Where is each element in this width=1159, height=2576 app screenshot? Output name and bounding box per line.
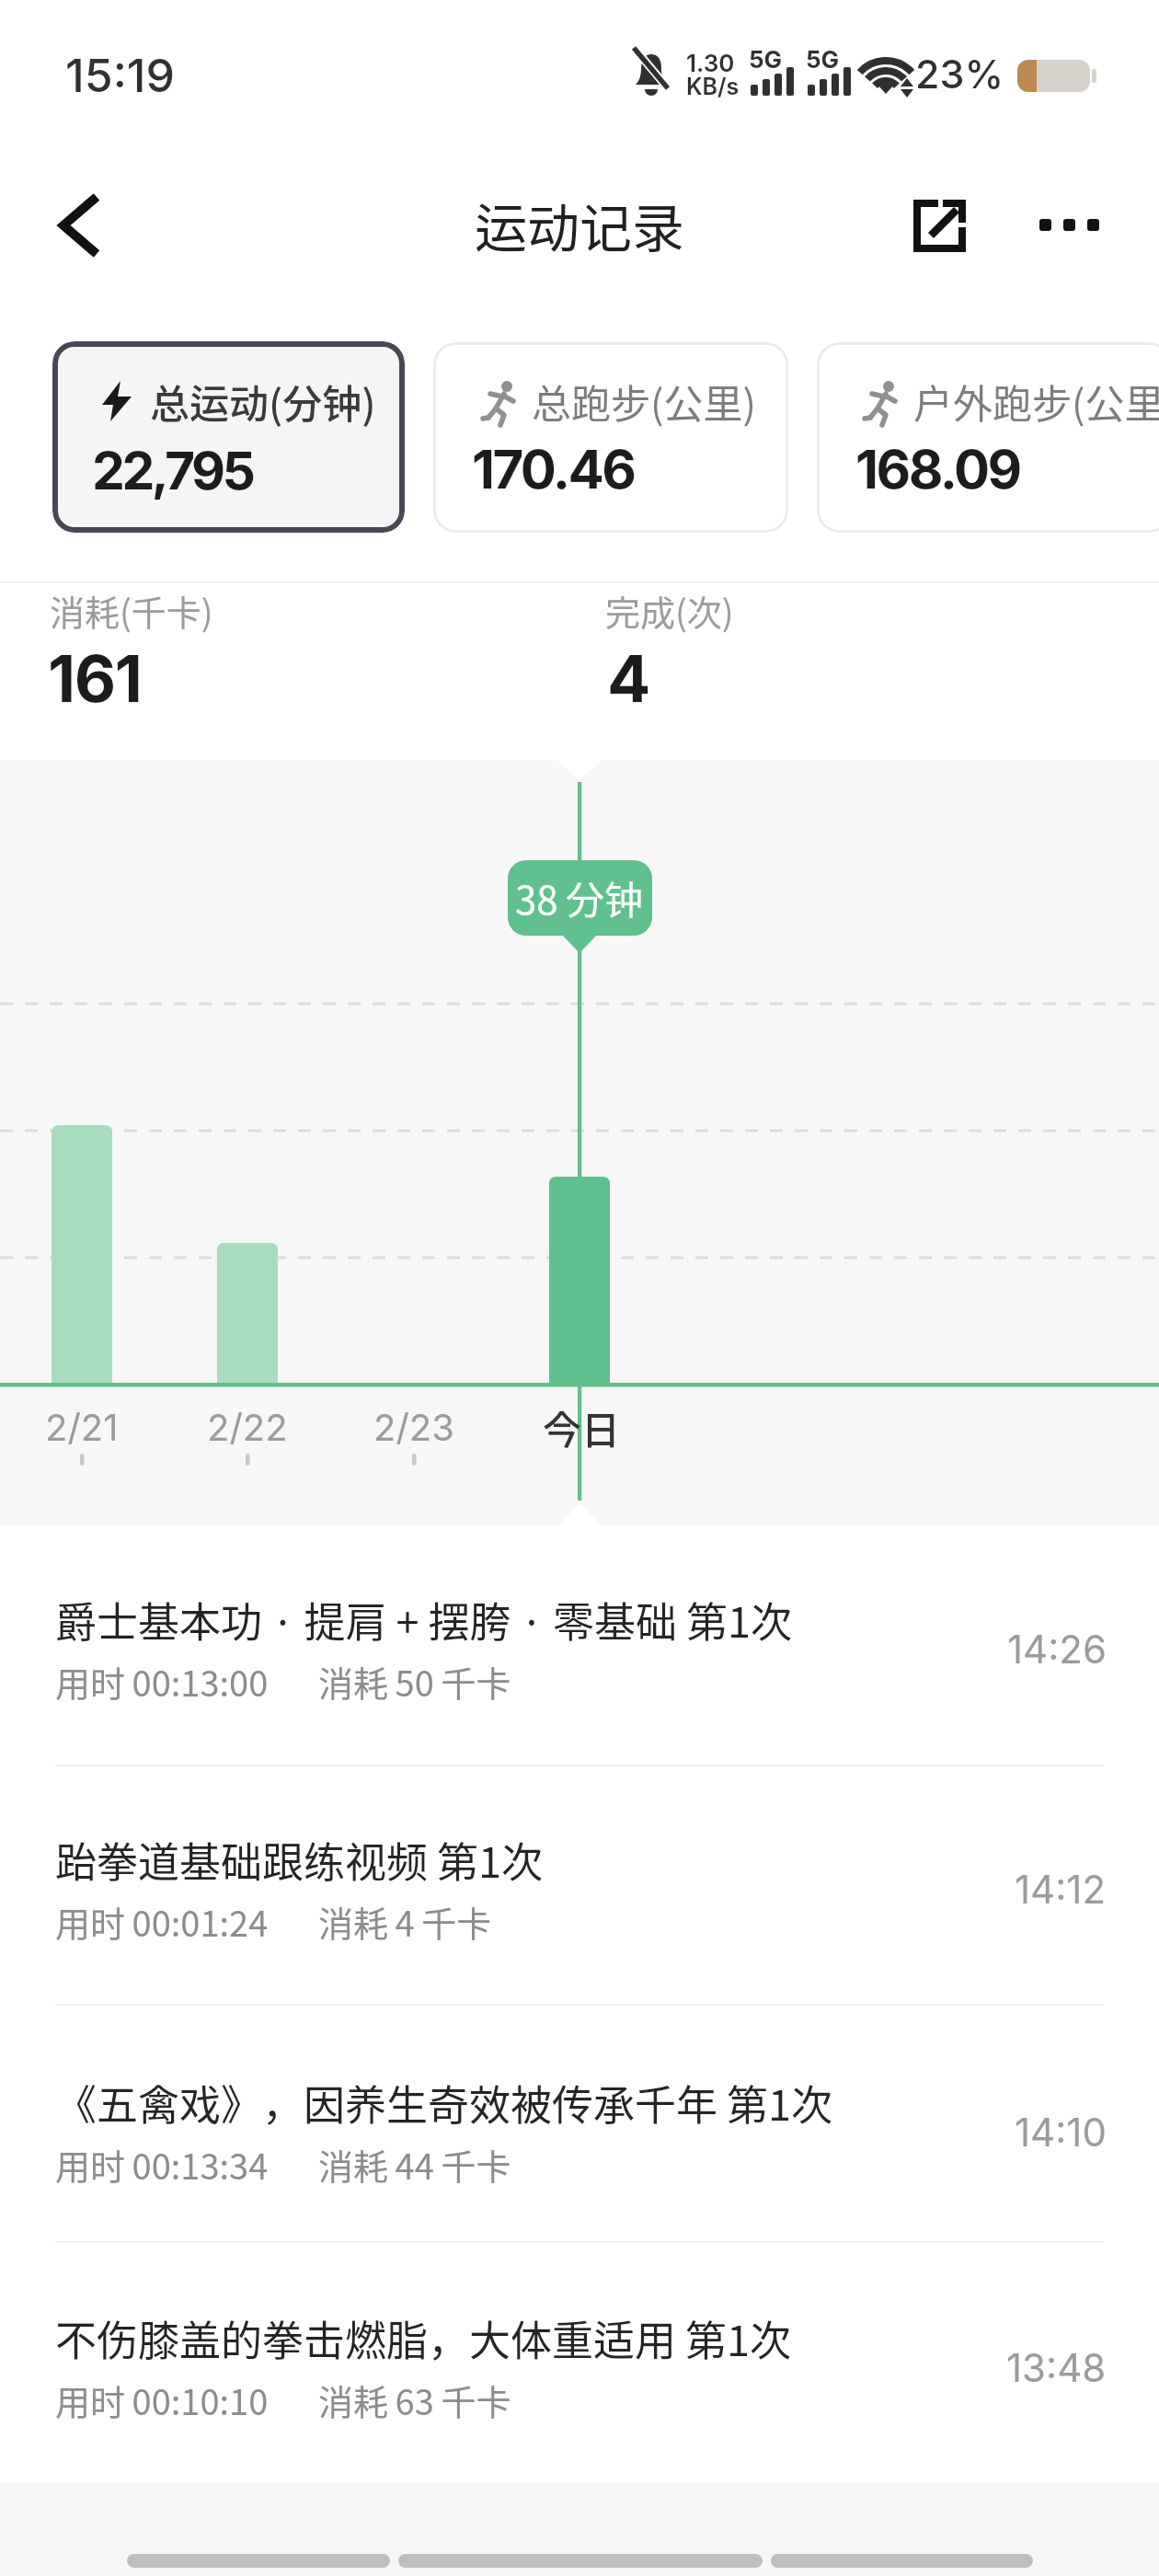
staticText: 用时 00:13:00 <box>55 1656 269 1707</box>
staticText: 户外跑步(公里) <box>913 373 1159 430</box>
button[interactable]: 爵士基本功 · 提肩 + 摆胯 · 零基础 第1次 <box>0 1518 1159 1748</box>
staticText: 完成(次) <box>605 585 734 636</box>
staticText: 总跑步(公里) <box>532 373 757 430</box>
staticText: 38 分钟 <box>515 869 644 926</box>
staticText: 用时 00:10:10 <box>55 2375 269 2425</box>
staticText: 爵士基本功 · 提肩 + 摆胯 · 零基础 第1次 <box>55 1590 793 1650</box>
staticText: 运动记录 <box>475 187 684 263</box>
staticText: 消耗 50 千卡 <box>318 1656 511 1707</box>
staticText: 170.46 <box>472 437 635 501</box>
staticText: 13:48 <box>1006 2344 1107 2391</box>
button[interactable]: 户外跑步(公里) <box>817 342 1159 533</box>
staticText: 23% <box>915 50 1004 98</box>
staticText: 2/22 <box>207 1405 288 1449</box>
button[interactable]: 总运动(分钟) <box>52 341 405 533</box>
staticText: 4 <box>607 639 651 718</box>
staticText: KB/s <box>686 73 740 100</box>
button[interactable]: 总跑步(公里) <box>433 342 788 533</box>
staticText: 14:12 <box>1015 1866 1107 1913</box>
staticText: 跆拳道基础跟练视频 第1次 <box>55 1830 544 1890</box>
staticText: 161 <box>48 639 142 718</box>
staticText: 消耗(千卡) <box>50 585 213 636</box>
button[interactable]: 不伤膝盖的拳击燃脂，大体重适用 第1次 <box>0 2237 1159 2467</box>
staticText: 总运动(分钟) <box>150 373 376 430</box>
button[interactable] <box>892 184 981 269</box>
staticText: 168.09 <box>855 437 1020 501</box>
staticText: 1.30 <box>686 49 735 77</box>
button[interactable]: 《五禽戏》，因养生奇效被传承千年 第1次 <box>0 2001 1159 2231</box>
button[interactable] <box>1021 193 1122 258</box>
staticText: 不伤膝盖的拳击燃脂，大体重适用 第1次 <box>55 2308 792 2368</box>
button[interactable] <box>37 181 125 270</box>
staticText: 22,795 <box>92 439 253 502</box>
staticText: 用时 00:01:24 <box>55 1896 269 1947</box>
staticText: 15:19 <box>65 48 176 103</box>
staticText: 用时 00:13:34 <box>55 2139 269 2190</box>
staticText: 《五禽戏》，因养生奇效被传承千年 第1次 <box>55 2073 833 2133</box>
staticText: 消耗 44 千卡 <box>318 2139 511 2190</box>
button[interactable]: 跆拳道基础跟练视频 第1次 <box>0 1758 1159 1988</box>
staticText: 14:26 <box>1007 1626 1107 1673</box>
staticText: 消耗 4 千卡 <box>318 1896 492 1947</box>
staticText: 5G <box>749 45 783 74</box>
staticText: 5G <box>806 45 840 74</box>
staticText: 今日 <box>543 1399 621 1455</box>
staticText: 2/23 <box>373 1405 454 1449</box>
staticText: 14:10 <box>1015 2109 1107 2156</box>
staticText: 2/21 <box>45 1405 119 1449</box>
staticText: 消耗 63 千卡 <box>318 2375 511 2425</box>
